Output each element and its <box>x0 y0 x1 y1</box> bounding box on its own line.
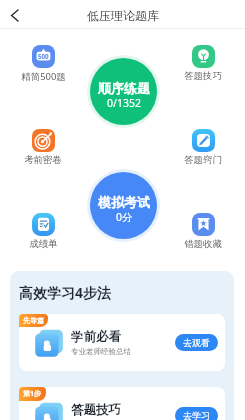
button[interactable]: 去学习 <box>175 407 218 420</box>
staticText: 考前密卷 <box>24 154 62 166</box>
button[interactable]: 去观看 <box>175 334 218 351</box>
staticText: 学前必看 <box>71 329 121 345</box>
button[interactable]: 学前必看 <box>19 314 225 371</box>
button[interactable]: Back <box>3 4 26 27</box>
staticText: 专业老师经验总结 <box>71 347 131 356</box>
button[interactable]: 答题技巧 <box>178 45 228 82</box>
staticText: 模拟考试 <box>98 194 150 210</box>
button[interactable]: 考前密卷 <box>18 129 68 166</box>
button[interactable]: 成绩单 <box>18 213 68 250</box>
button[interactable]: 顺序练题 <box>90 58 157 125</box>
staticText: 去学习 <box>183 410 210 420</box>
staticText: 低压理论题库 <box>87 8 159 23</box>
staticText: 去观看 <box>183 337 210 348</box>
staticText: 答题技巧 <box>71 402 121 418</box>
button[interactable]: 答题技巧 <box>19 387 225 420</box>
staticText: 第1步 <box>23 389 42 399</box>
staticText: 错题收藏 <box>184 238 222 250</box>
staticText: 精简500题 <box>21 70 66 83</box>
staticText: 顺序练题 <box>98 80 150 96</box>
button[interactable]: 错题收藏 <box>178 213 228 250</box>
staticText: 500 <box>38 52 49 60</box>
button[interactable]: 模拟考试 <box>90 172 157 239</box>
button[interactable]: 500 <box>18 45 68 83</box>
staticText: 答题技巧 <box>184 70 222 82</box>
staticText: 答题窍门 <box>184 154 222 166</box>
staticText: 成绩单 <box>29 238 58 250</box>
staticText: 高效学习4步法 <box>19 283 112 302</box>
staticText: 0/1352 <box>107 96 141 110</box>
button[interactable]: 答题窍门 <box>178 129 228 166</box>
staticText: 0分 <box>116 210 133 224</box>
staticText: 先导篇 <box>23 316 44 325</box>
